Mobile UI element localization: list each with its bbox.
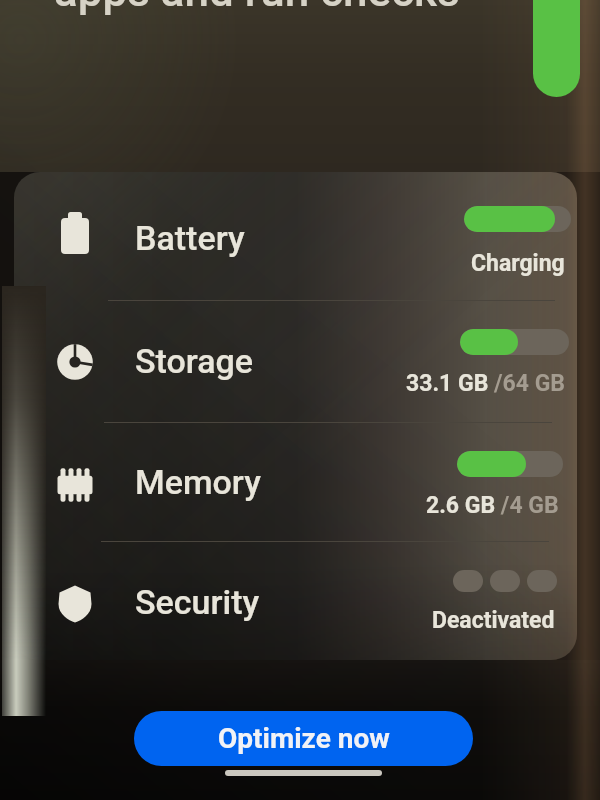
staticText: apps and run checks (54, 0, 460, 17)
other: Security (52, 581, 98, 627)
staticText: Optimize now (218, 722, 390, 755)
staticText: Battery (135, 218, 245, 258)
other: Storage (52, 339, 98, 385)
other: Battery (52, 211, 98, 257)
button[interactable] (14, 541, 577, 660)
staticText: Storage (135, 341, 254, 381)
button[interactable] (14, 172, 577, 300)
staticText: Charging (471, 250, 565, 277)
staticText: Memory (135, 462, 261, 502)
staticText: 2.6 GB /4 GB (426, 492, 559, 519)
staticText: Deactivated (432, 607, 555, 634)
staticText: 33.1 GB /64 GB (406, 370, 566, 397)
button[interactable] (14, 300, 577, 422)
button[interactable]: Optimize now (134, 711, 473, 766)
other: Memory (52, 462, 98, 508)
button[interactable] (14, 422, 577, 541)
staticText: Security (135, 582, 260, 622)
